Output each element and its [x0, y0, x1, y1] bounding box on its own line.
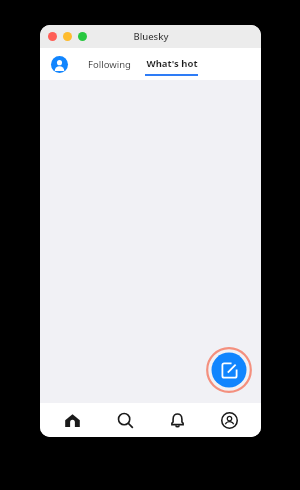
staticText: Bluesky — [133, 30, 169, 43]
button[interactable]: Window control — [48, 32, 57, 41]
button[interactable]: What's hot — [145, 48, 198, 80]
button[interactable]: Notifications — [151, 403, 203, 437]
button[interactable]: Compose new post — [206, 347, 252, 393]
staticText: Following — [88, 58, 131, 71]
staticText: What's hot — [146, 57, 198, 70]
button[interactable]: Home — [46, 403, 99, 437]
button[interactable]: Window control — [78, 32, 87, 41]
button[interactable]: Window control — [63, 32, 72, 41]
button[interactable]: Following — [88, 48, 131, 80]
button[interactable]: Account — [48, 53, 70, 75]
button[interactable]: Search — [99, 403, 151, 437]
button[interactable]: Profile — [203, 403, 255, 437]
